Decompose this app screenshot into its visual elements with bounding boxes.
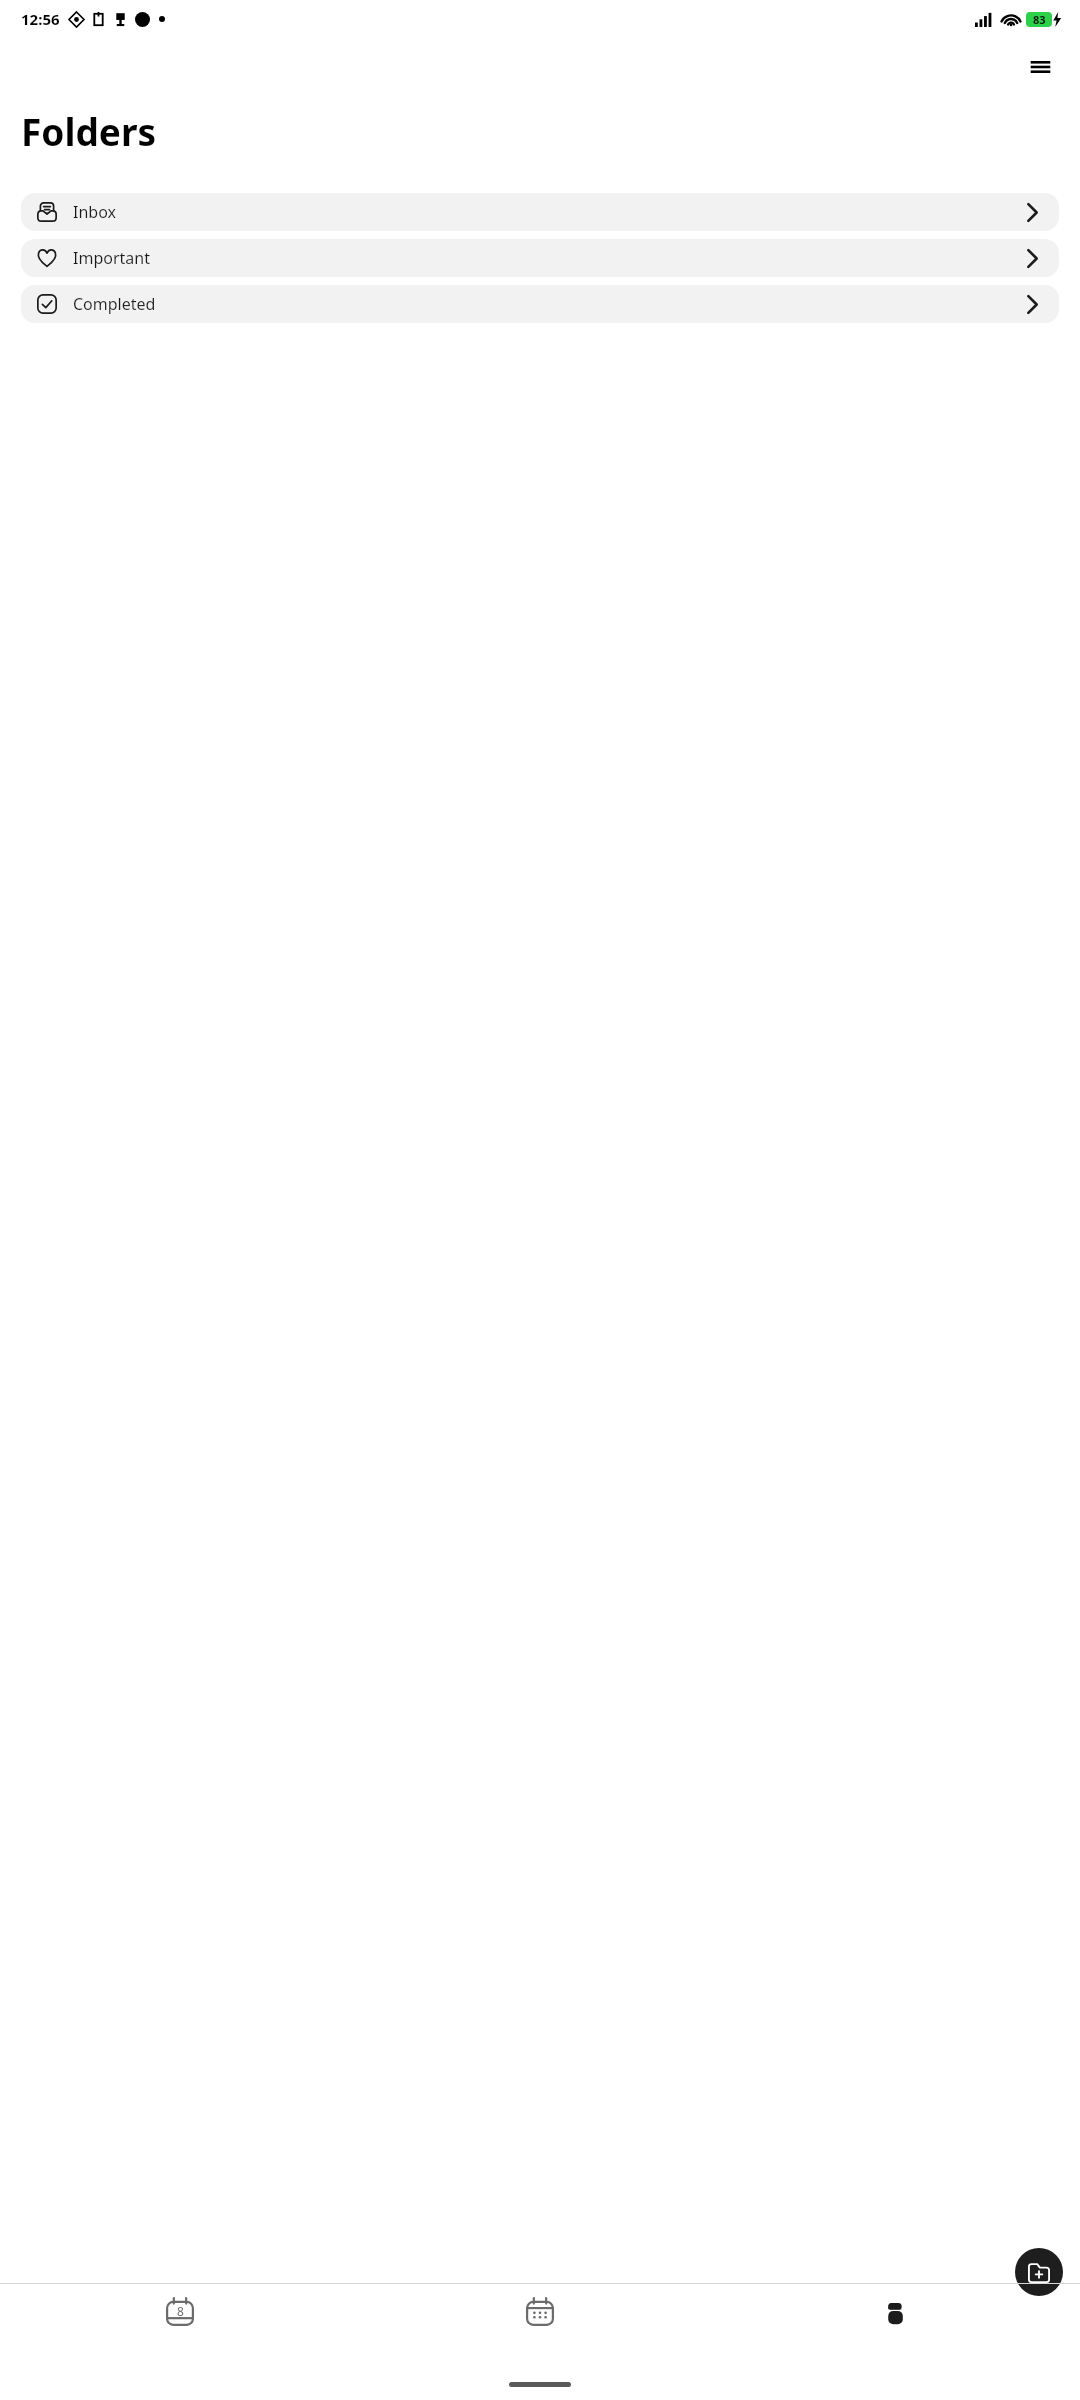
- staticText: 83: [1033, 12, 1046, 27]
- button[interactable]: New folder: [1015, 2248, 1063, 2296]
- button[interactable]: Calendar day: [0, 2284, 360, 2362]
- staticText: Important: [73, 247, 150, 269]
- staticText: 8: [177, 2303, 184, 2319]
- staticText: Folders: [21, 106, 157, 156]
- staticText: Completed: [73, 293, 156, 315]
- button[interactable]: Completed: [21, 285, 1059, 323]
- button[interactable]: Inbox: [21, 193, 1059, 231]
- button[interactable]: Calendar month: [360, 2284, 720, 2362]
- button[interactable]: Folders: [720, 2284, 1080, 2362]
- button[interactable]: Important: [21, 239, 1059, 277]
- staticText: 12:56: [21, 9, 60, 29]
- button[interactable]: Menu: [1020, 47, 1060, 87]
- staticText: Inbox: [73, 201, 116, 223]
